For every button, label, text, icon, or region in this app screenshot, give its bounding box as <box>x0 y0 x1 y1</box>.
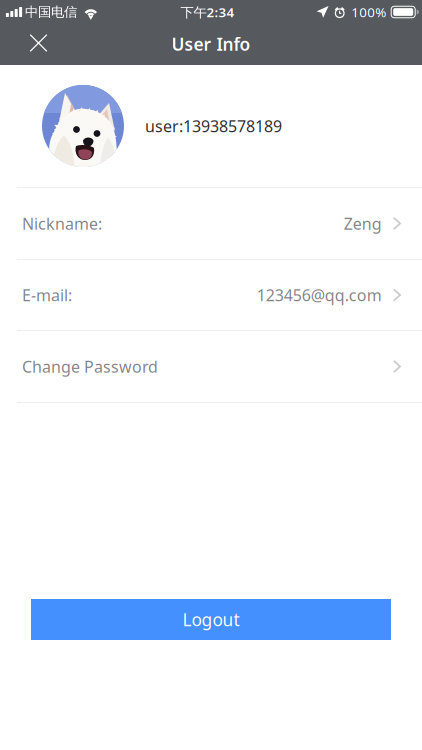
staticText: E-mail: <box>22 284 72 306</box>
staticText: user:13938578189 <box>145 115 282 137</box>
staticText: 中国电信 <box>25 4 77 20</box>
staticText: 100% <box>351 3 386 21</box>
button[interactable]: E-mail: <box>0 260 422 330</box>
staticText: 下午2:34 <box>181 3 235 21</box>
staticText: 123456@qq.com <box>257 284 382 306</box>
staticText: Change Password <box>22 356 158 377</box>
button[interactable]: Close <box>17 22 60 66</box>
button[interactable]: Nickname: <box>0 188 422 259</box>
staticText: Logout <box>182 608 239 631</box>
button[interactable]: Logout <box>31 599 391 640</box>
button[interactable]: Change Password <box>0 331 422 402</box>
staticText: Zeng <box>344 213 382 234</box>
staticText: User Info <box>171 32 250 55</box>
staticText: Nickname: <box>22 213 102 234</box>
